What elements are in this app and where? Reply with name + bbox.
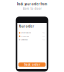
staticText: Preparing	[21, 35, 29, 37]
staticText: 4:18	[42, 39, 45, 41]
staticText: On the way	[21, 39, 28, 41]
staticText: Your order	[19, 25, 34, 28]
staticText: Order placed	[21, 32, 31, 34]
staticText: store to door	[22, 7, 41, 10]
staticText: 4:09	[42, 35, 45, 37]
staticText: Track order	[24, 63, 40, 66]
staticText: 4:02	[42, 32, 45, 34]
button[interactable]: Track order	[18, 62, 45, 67]
staticText: Track your order from	[16, 2, 47, 6]
